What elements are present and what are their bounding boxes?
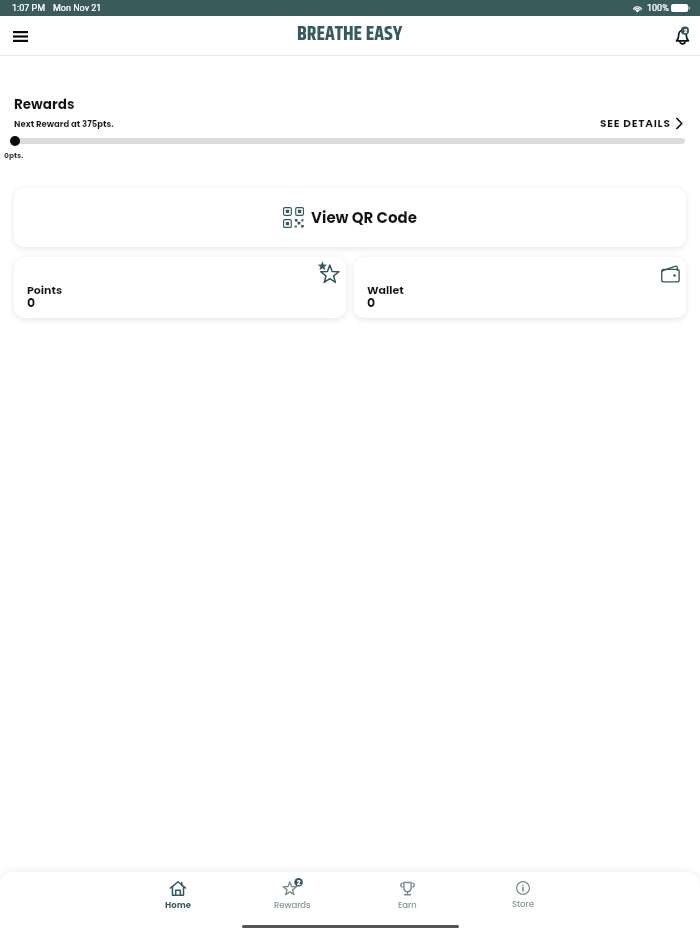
staticText: 1:07 PM xyxy=(12,3,46,14)
staticText: 100% xyxy=(647,3,669,14)
button[interactable]: 2 xyxy=(235,881,350,934)
staticText: 0 xyxy=(27,294,36,311)
button[interactable]: Open navigation menu xyxy=(2,18,38,54)
button[interactable]: Points xyxy=(14,257,346,318)
button[interactable]: Earn xyxy=(350,881,465,934)
staticText: Wallet xyxy=(367,282,404,297)
staticText: 2 xyxy=(684,27,688,35)
button[interactable]: Home xyxy=(120,881,235,934)
staticText: 0pts. xyxy=(4,150,24,160)
button[interactable]: Notifications xyxy=(665,19,699,53)
staticText: Rewards xyxy=(274,899,311,911)
staticText: Points xyxy=(27,282,63,297)
staticText: View QR Code xyxy=(311,207,417,228)
staticText: Next Reward at 375pts. xyxy=(14,118,114,130)
staticText: BREATHE EASY xyxy=(297,19,403,50)
staticText: 0 xyxy=(367,294,376,311)
button[interactable]: Store xyxy=(465,881,580,934)
staticText: Rewards xyxy=(14,95,75,114)
button[interactable]: View QR Code xyxy=(14,188,686,247)
staticText: Earn xyxy=(398,899,417,911)
button[interactable]: SEE DETAILS xyxy=(600,116,683,131)
button[interactable]: Wallet xyxy=(354,257,686,318)
staticText: SEE DETAILS xyxy=(600,116,671,131)
staticText: Mon Nov 21 xyxy=(53,3,102,14)
staticText: Home xyxy=(165,899,191,911)
staticText: 2 xyxy=(297,879,301,887)
staticText: Store xyxy=(512,898,534,910)
